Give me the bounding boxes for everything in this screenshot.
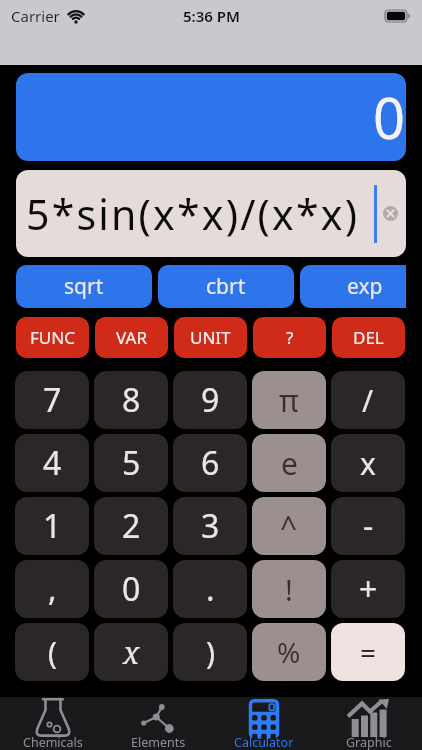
button[interactable]: 8 xyxy=(94,371,168,429)
staticText: 4 xyxy=(43,441,62,485)
button[interactable]: x xyxy=(331,434,405,492)
button[interactable]: e xyxy=(252,434,326,492)
staticText: Graphic xyxy=(346,734,392,750)
staticText: UNIT xyxy=(190,326,231,349)
staticText: Chemicals xyxy=(23,734,83,750)
button[interactable]: ) xyxy=(173,623,247,681)
button[interactable]: . xyxy=(173,560,247,618)
staticText: 6 xyxy=(201,441,220,485)
staticText: 5:36 PM xyxy=(183,6,240,26)
button[interactable]: = xyxy=(331,623,405,681)
button[interactable]: 5 xyxy=(94,434,168,492)
button[interactable]: ( xyxy=(15,623,89,681)
staticText: ) xyxy=(206,632,215,673)
staticText: 5 xyxy=(122,441,141,485)
button[interactable]: Chemicals xyxy=(1,697,105,750)
staticText: 9 xyxy=(201,378,220,422)
staticText: . xyxy=(206,567,215,611)
staticText: 7 xyxy=(43,378,62,422)
staticText: + xyxy=(359,567,378,611)
staticText: 0 xyxy=(122,567,141,611)
button[interactable]: 0 xyxy=(94,560,168,618)
button[interactable]: 3 xyxy=(173,497,247,555)
button[interactable]: Graphic xyxy=(317,697,421,750)
staticText: Calculator xyxy=(234,734,294,750)
button[interactable]: VAR xyxy=(95,317,168,358)
staticText: % xyxy=(277,633,301,671)
staticText: , xyxy=(48,567,57,611)
button[interactable]: , xyxy=(15,560,89,618)
button[interactable]: DEL xyxy=(332,317,405,358)
staticText: Carrier xyxy=(11,6,60,26)
button[interactable]: 4 xyxy=(15,434,89,492)
button[interactable]: Elements xyxy=(106,697,210,750)
staticText: - xyxy=(363,504,374,548)
staticText: Elements xyxy=(131,734,186,750)
staticText: exp xyxy=(347,272,383,301)
button[interactable]: + xyxy=(331,560,405,618)
staticText: sqrt xyxy=(64,272,104,301)
button[interactable]: sqrt xyxy=(16,265,152,308)
button[interactable]: 2 xyxy=(94,497,168,555)
button[interactable]: cbrt xyxy=(158,265,294,308)
staticText: 1 xyxy=(43,504,62,548)
staticText: = xyxy=(360,633,377,671)
staticText: 2 xyxy=(122,504,141,548)
button[interactable]: ^ xyxy=(252,497,326,555)
button[interactable]: 5*sin(x*x)/(x*x) xyxy=(16,170,406,257)
staticText: x xyxy=(123,632,140,673)
button[interactable]: / xyxy=(331,371,405,429)
button[interactable]: FUNC xyxy=(16,317,89,358)
button[interactable]: - xyxy=(331,497,405,555)
staticText: DEL xyxy=(353,326,384,349)
button[interactable]: % xyxy=(252,623,326,681)
button[interactable]: 1 xyxy=(15,497,89,555)
staticText: ( xyxy=(48,632,57,673)
staticText: x xyxy=(360,443,376,484)
button[interactable]: ? xyxy=(253,317,326,358)
staticText: ? xyxy=(286,326,294,349)
staticText: ! xyxy=(285,570,293,609)
button[interactable]: exp xyxy=(300,265,406,308)
staticText: 5*sin(x*x)/(x*x) xyxy=(26,186,360,242)
button[interactable]: 9 xyxy=(173,371,247,429)
button[interactable]: π xyxy=(252,371,326,429)
button[interactable]: UNIT xyxy=(174,317,247,358)
staticText: 8 xyxy=(122,378,141,422)
staticText: FUNC xyxy=(30,326,75,349)
staticText: / xyxy=(362,380,374,421)
staticText: VAR xyxy=(116,326,147,349)
button[interactable]: 6 xyxy=(173,434,247,492)
button[interactable]: x xyxy=(94,623,168,681)
button[interactable]: Calculator xyxy=(212,697,316,750)
button[interactable]: ! xyxy=(252,560,326,618)
staticText: cbrt xyxy=(206,272,246,301)
staticText: 0 xyxy=(373,79,406,155)
staticText: π xyxy=(279,380,299,421)
button[interactable]: 7 xyxy=(15,371,89,429)
staticText: e xyxy=(281,443,298,484)
staticText: 3 xyxy=(201,504,220,548)
staticText: ^ xyxy=(280,506,298,547)
